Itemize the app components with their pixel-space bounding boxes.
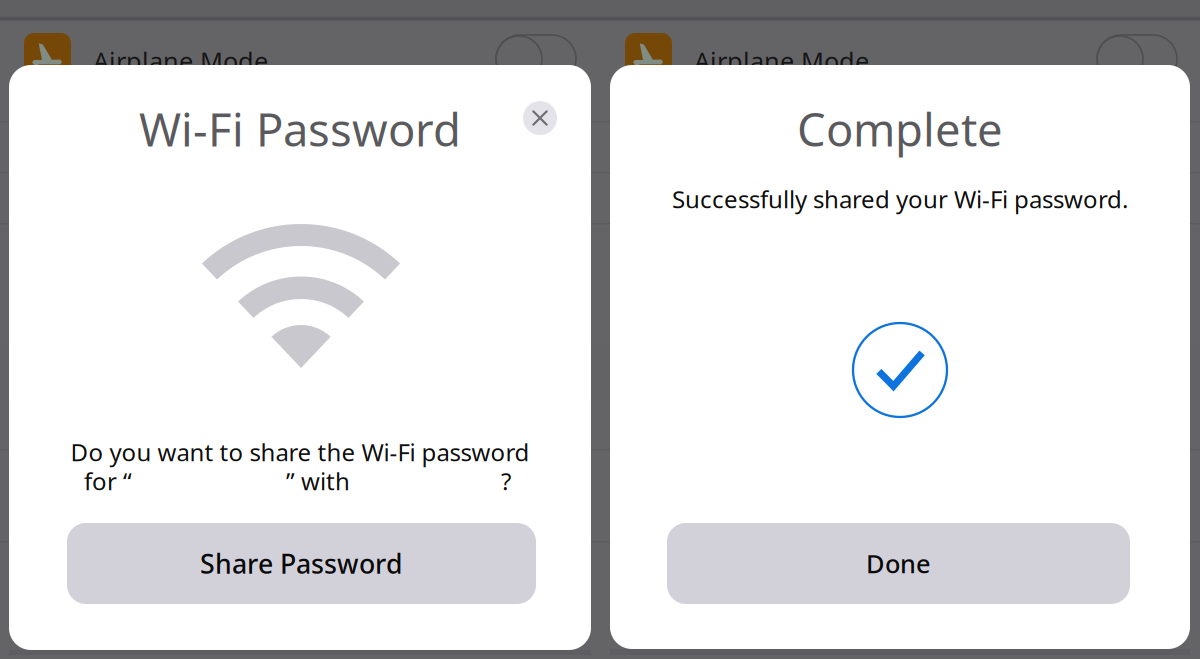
staticText: Do you want to share the Wi-Fi password (70, 436, 529, 468)
staticText: for “ (84, 465, 132, 497)
button[interactable]: Done (667, 523, 1130, 604)
staticText: Successfully shared your Wi-Fi password. (672, 183, 1128, 215)
button[interactable]: Airplane Mode (1097, 35, 1177, 83)
staticText: Share Password (200, 546, 403, 581)
staticText: Done (866, 547, 931, 580)
staticText: Airplane Mode (93, 44, 268, 78)
staticText: Complete (797, 99, 1003, 159)
staticText: Airplane Mode (694, 44, 869, 78)
button[interactable]: Airplane Mode (496, 35, 576, 83)
staticText: ” with (286, 465, 350, 497)
staticText: Wi-Fi Password (139, 99, 461, 159)
button[interactable]: Share Password (67, 523, 536, 604)
staticText: ? (501, 465, 511, 497)
button[interactable]: Close (523, 101, 557, 135)
